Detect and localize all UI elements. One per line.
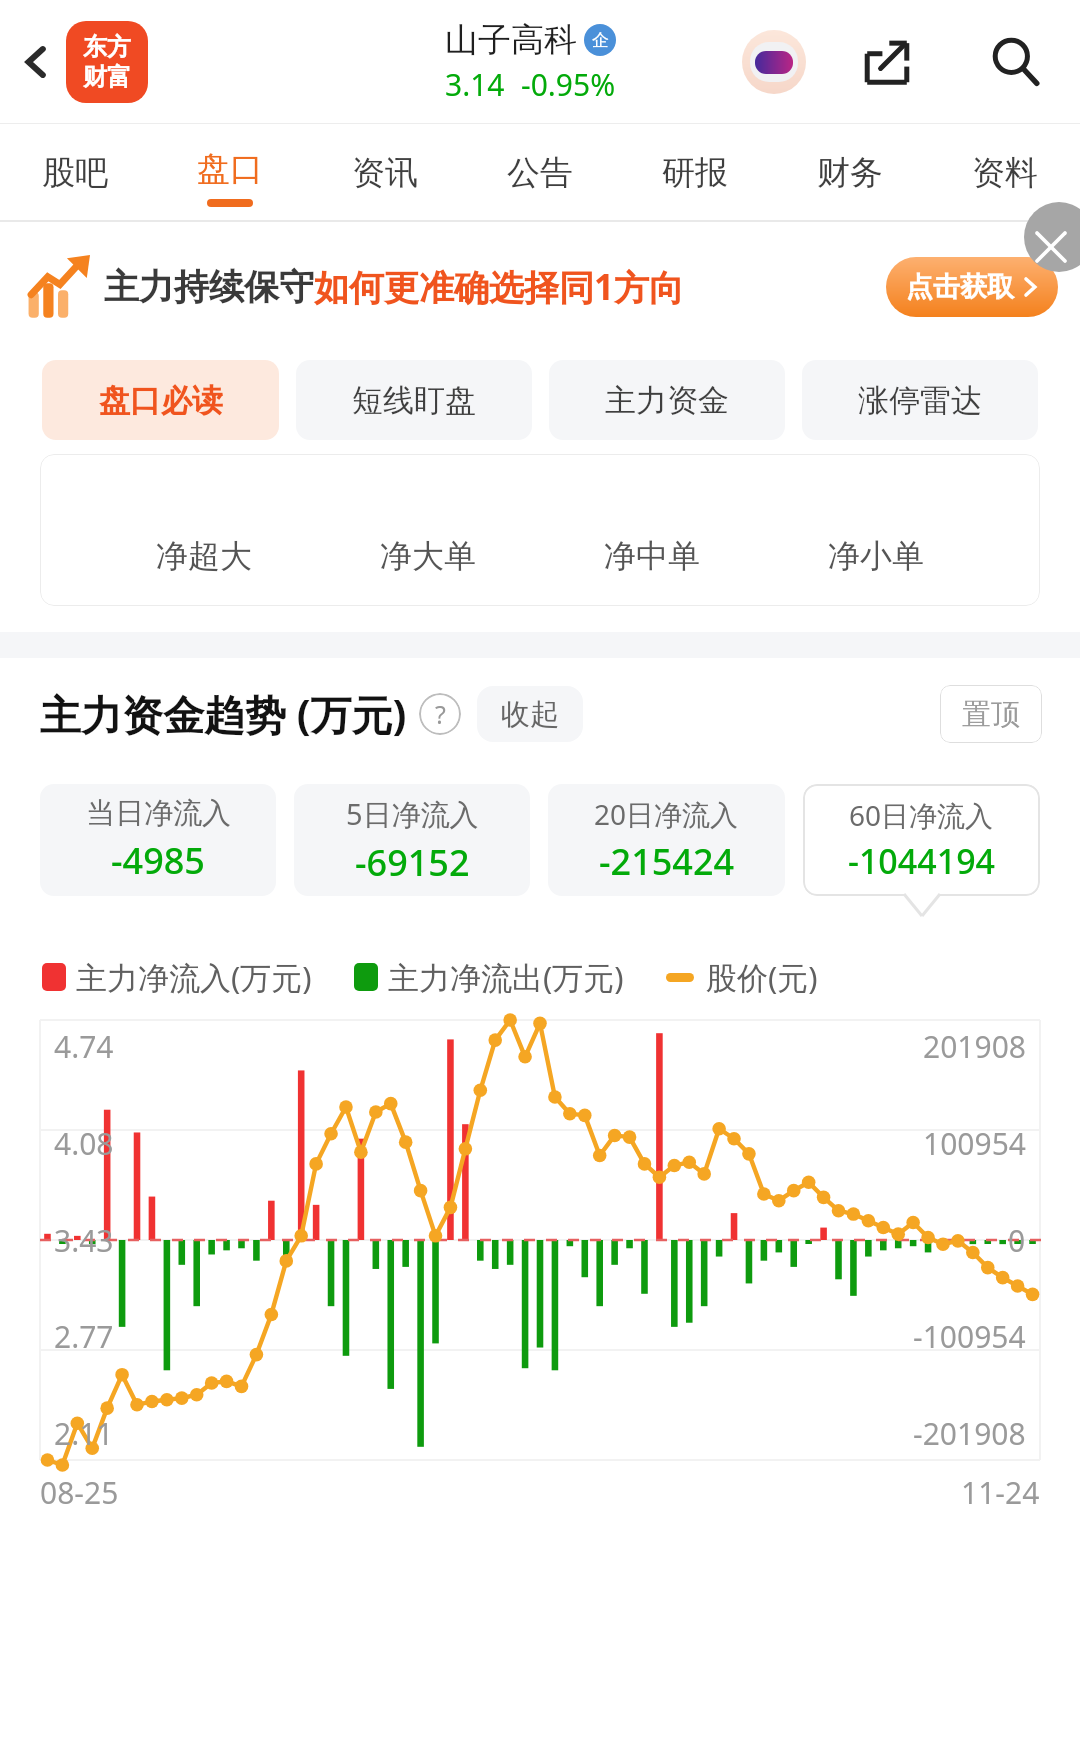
staticText: -215424 xyxy=(599,837,735,886)
staticText: 2.77 xyxy=(54,1316,114,1357)
staticText: 4.74 xyxy=(54,1026,114,1067)
staticText: 公告 xyxy=(507,152,573,194)
button[interactable]: 资讯 xyxy=(344,124,426,222)
staticText: -1044194 xyxy=(848,838,996,884)
button[interactable]: Search xyxy=(976,22,1056,102)
staticText: 资料 xyxy=(972,152,1038,194)
button[interactable]: 盘口必读 xyxy=(42,360,279,440)
button[interactable]: 5日净流入 xyxy=(294,784,530,896)
staticText: 20日净流入 xyxy=(594,795,739,833)
staticText: 0 xyxy=(1008,1220,1026,1261)
staticText: 当日净流入 xyxy=(86,795,231,832)
button[interactable]: 研报 xyxy=(654,124,736,222)
staticText: 净大单 xyxy=(380,536,476,576)
staticText: 点击获取 xyxy=(906,270,1014,304)
staticText: 研报 xyxy=(662,152,728,194)
staticText: 净超大 xyxy=(156,536,252,576)
staticText: 股价(元) xyxy=(706,956,818,998)
staticText: 100954 xyxy=(923,1123,1026,1164)
staticText: -100954 xyxy=(913,1316,1026,1357)
staticText: 3.43 xyxy=(54,1220,114,1261)
staticText: 财富 xyxy=(83,62,131,92)
button[interactable]: Close advertisement xyxy=(1024,202,1080,272)
staticText: 11-24 xyxy=(961,1472,1040,1513)
staticText: 4.08 xyxy=(54,1123,114,1164)
button[interactable]: 股吧 xyxy=(34,124,116,222)
staticText: 收起 xyxy=(501,696,559,733)
staticText: 山子高科 xyxy=(445,19,577,61)
button[interactable]: 主力资金 xyxy=(549,360,785,440)
staticText: 主力资金 xyxy=(605,381,729,420)
staticText: 201908 xyxy=(923,1026,1026,1067)
staticText: -201908 xyxy=(913,1413,1026,1454)
button[interactable]: AI assistant xyxy=(740,28,808,96)
staticText: 盘口必读 xyxy=(99,381,223,420)
staticText: ? xyxy=(435,697,446,731)
button[interactable]: 净中单 xyxy=(592,528,712,584)
button[interactable]: 公告 xyxy=(499,124,581,222)
staticText: 主力净流出(万元) xyxy=(388,956,624,998)
staticText: 净中单 xyxy=(604,536,700,576)
button[interactable]: 点击获取 xyxy=(886,257,1058,317)
button[interactable]: 盘口 xyxy=(189,124,271,222)
button[interactable]: 收起 xyxy=(477,686,583,742)
button[interactable]: 净小单 xyxy=(816,528,936,584)
staticText: -0.95% xyxy=(521,64,616,105)
button[interactable]: Help xyxy=(419,693,461,735)
staticText: 净小单 xyxy=(828,536,924,576)
staticText: 3.14 xyxy=(445,64,505,105)
staticText: 如何更准确选择同1方向 xyxy=(314,263,685,311)
staticText: 资讯 xyxy=(352,152,418,194)
staticText: 主力持续保守 xyxy=(104,265,314,309)
button[interactable]: 20日净流入 xyxy=(548,784,785,896)
button[interactable]: 财务 xyxy=(809,124,891,222)
staticText: 东方 xyxy=(83,32,131,62)
staticText: -4985 xyxy=(111,836,205,885)
button[interactable]: East Money home xyxy=(66,21,148,103)
staticText: 企 xyxy=(592,30,609,51)
staticText: 涨停雷达 xyxy=(858,381,982,420)
staticText: 主力净流入(万元) xyxy=(76,956,312,998)
button[interactable]: 净超大 xyxy=(144,528,264,584)
staticText: -69152 xyxy=(355,838,470,887)
button[interactable]: 涨停雷达 xyxy=(802,360,1038,440)
button[interactable]: 净大单 xyxy=(368,528,488,584)
staticText: 置顶 xyxy=(962,696,1020,733)
staticText: 5日净流入 xyxy=(346,794,479,834)
staticText: 短线盯盘 xyxy=(352,381,476,420)
button[interactable]: 资料 xyxy=(964,124,1046,222)
staticText: 股吧 xyxy=(42,152,108,194)
button[interactable]: 60日净流入 xyxy=(803,784,1040,896)
staticText: 08-25 xyxy=(40,1472,119,1513)
button[interactable]: 置顶 xyxy=(940,685,1042,743)
button[interactable]: 当日净流入 xyxy=(40,784,276,896)
staticText: 盘口 xyxy=(197,148,263,190)
staticText: 60日净流入 xyxy=(849,796,994,834)
button[interactable]: Back xyxy=(4,30,68,94)
staticText: 2.11 xyxy=(54,1413,114,1454)
button[interactable]: 短线盯盘 xyxy=(296,360,532,440)
staticText: 主力资金趋势 (万元) xyxy=(40,686,407,742)
staticText: 财务 xyxy=(817,152,883,194)
button[interactable]: Share xyxy=(852,27,922,97)
